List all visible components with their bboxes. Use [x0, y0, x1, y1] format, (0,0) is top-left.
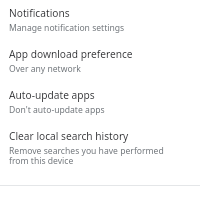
staticText: Don't auto-update apps — [9, 104, 105, 116]
staticText: Clear local search history — [9, 129, 129, 143]
staticText: Over any network — [9, 63, 81, 75]
button[interactable]: Notifications — [0, 0, 200, 34]
staticText: App download preference — [9, 47, 133, 61]
staticText: Notifications — [9, 6, 70, 20]
staticText: Auto-update apps — [9, 88, 95, 102]
staticText: Remove searches you have performed from … — [9, 145, 182, 167]
button[interactable]: App download preference — [0, 47, 200, 75]
button[interactable]: Clear local search history — [0, 129, 200, 167]
button[interactable]: Auto-update apps — [0, 88, 200, 116]
staticText: Manage notification settings — [9, 22, 125, 34]
